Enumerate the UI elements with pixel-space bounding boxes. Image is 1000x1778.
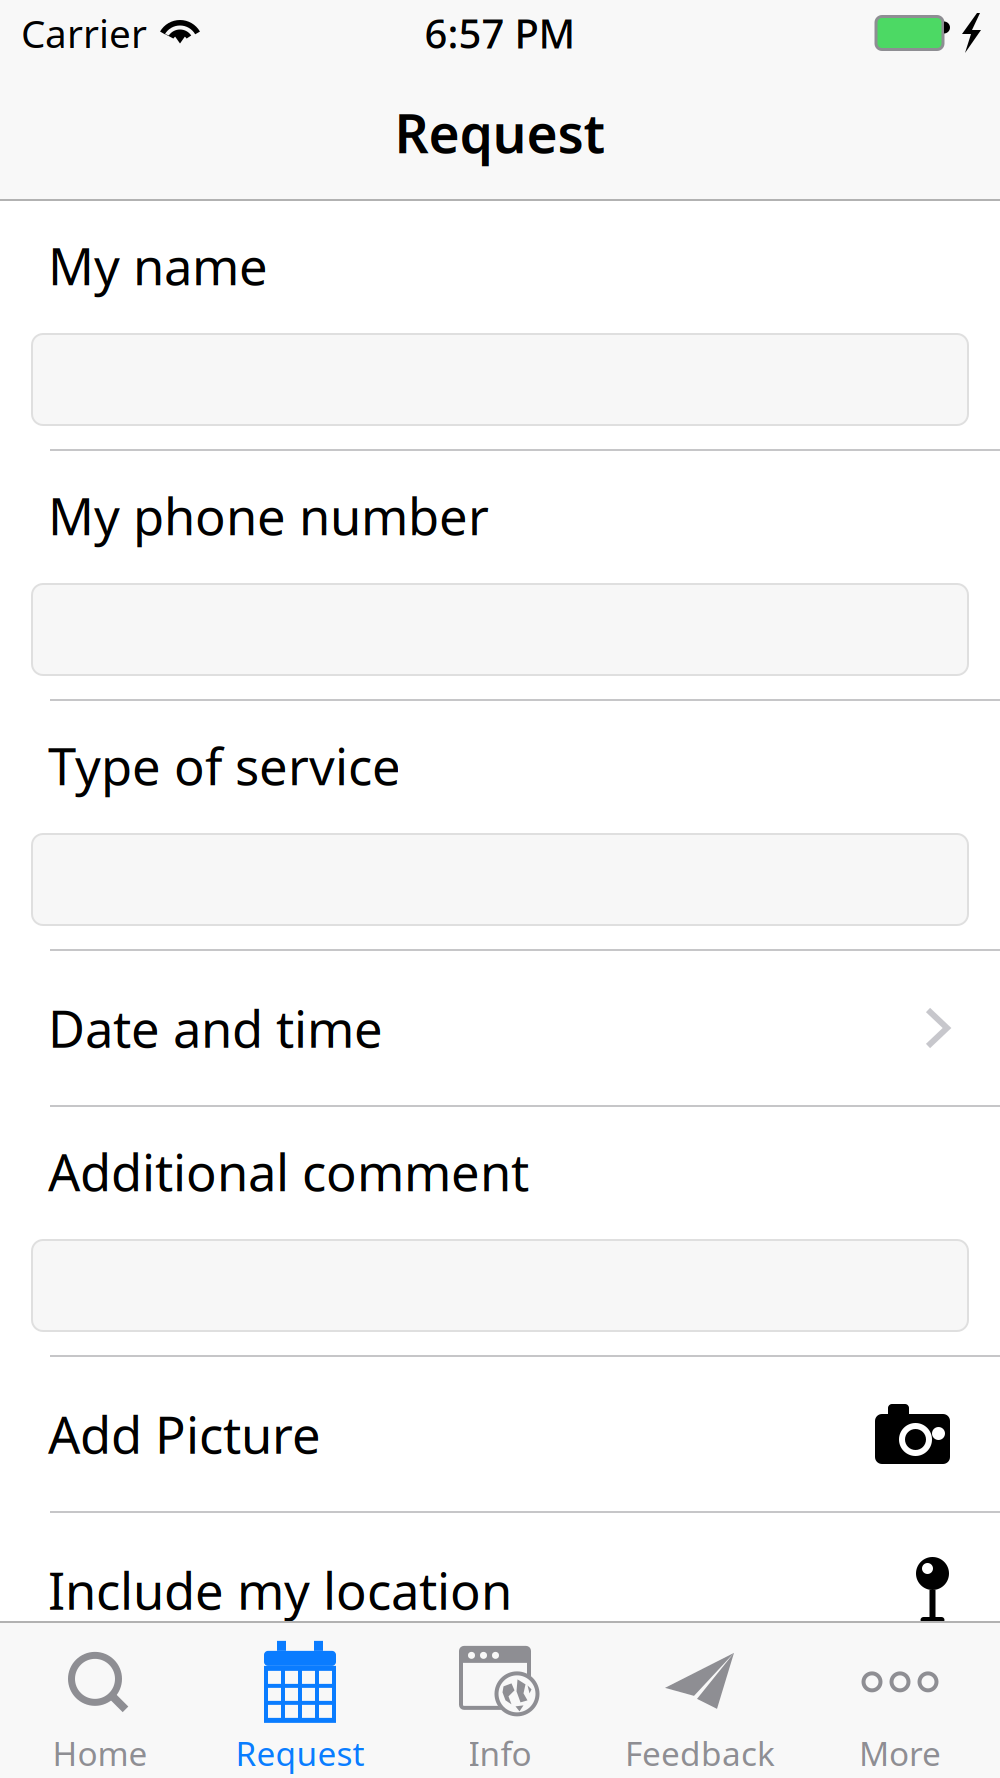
staticText: Type of service: [48, 732, 401, 799]
staticText: Feedback: [625, 1731, 775, 1775]
staticText: 6:57 PM: [424, 6, 575, 59]
button[interactable]: Type of service: [0, 834, 1000, 925]
staticText: Include my location: [48, 1556, 512, 1624]
button[interactable]: My phone number: [0, 584, 1000, 675]
staticText: Home: [52, 1731, 147, 1775]
button[interactable]: Date and time: [0, 951, 1000, 1105]
button[interactable]: More: [800, 1623, 1000, 1778]
staticText: My phone number: [48, 482, 489, 549]
staticText: Request: [394, 97, 605, 168]
button[interactable]: Feedback: [600, 1623, 800, 1778]
button[interactable]: Info: [400, 1623, 600, 1778]
button[interactable]: Home: [0, 1623, 200, 1778]
staticText: Add Picture: [48, 1400, 321, 1468]
button[interactable]: Additional comment: [0, 1240, 1000, 1331]
staticText: Additional comment: [48, 1138, 529, 1205]
staticText: Date and time: [48, 994, 383, 1062]
staticText: More: [859, 1731, 941, 1775]
button[interactable]: Request: [200, 1623, 400, 1778]
staticText: Request: [235, 1731, 364, 1775]
staticText: Carrier: [21, 7, 147, 59]
staticText: My name: [48, 232, 268, 299]
button[interactable]: Include my location: [0, 1513, 1000, 1667]
staticText: Info: [468, 1731, 531, 1775]
button[interactable]: Add Picture: [0, 1357, 1000, 1511]
button[interactable]: My name: [0, 334, 1000, 425]
